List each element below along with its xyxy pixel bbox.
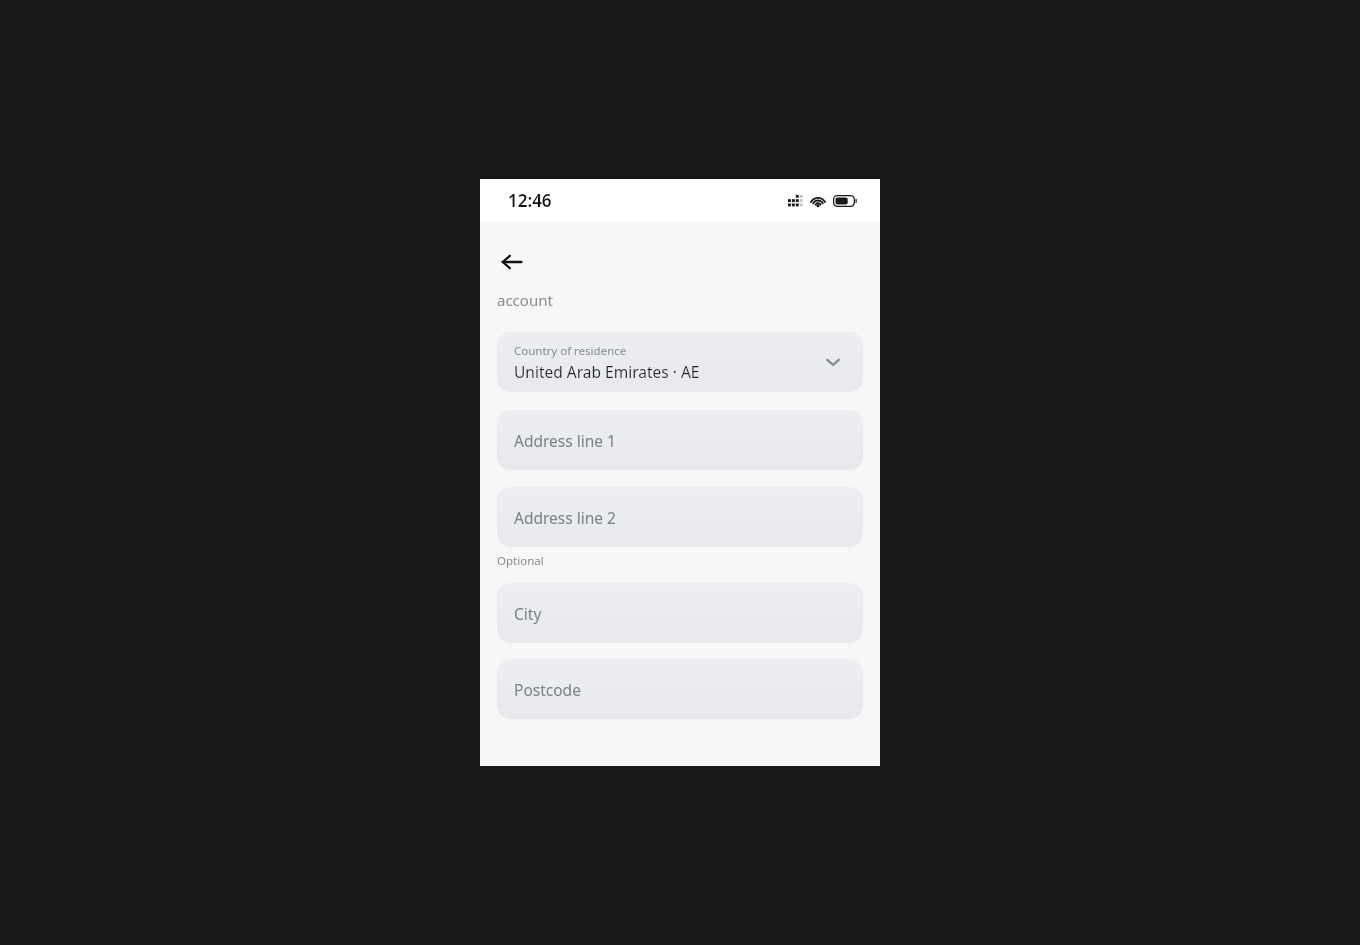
staticText: Postcode <box>514 679 581 700</box>
button[interactable]: Address line 2 <box>497 487 863 547</box>
staticText: Optional <box>497 553 544 569</box>
staticText: Address line 2 <box>514 507 616 528</box>
staticText: United Arab Emirates · AE <box>514 361 700 382</box>
button[interactable]: Postcode <box>497 659 863 719</box>
staticText: account <box>497 290 553 310</box>
button[interactable]: Address line 1 <box>497 410 863 470</box>
staticText: 12:46 <box>508 189 552 212</box>
button[interactable]: Back <box>490 240 534 284</box>
button[interactable]: Country of residence <box>497 332 863 392</box>
button[interactable]: City <box>497 583 863 643</box>
staticText: Address line 1 <box>514 430 616 451</box>
staticText: Country of residence <box>514 343 627 359</box>
staticText: City <box>514 603 542 624</box>
